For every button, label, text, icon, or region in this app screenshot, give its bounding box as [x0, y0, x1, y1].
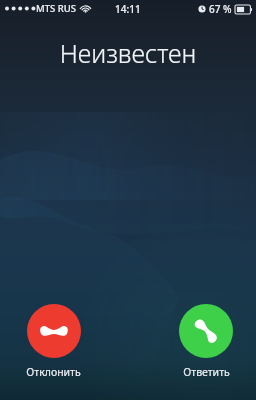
- staticText: 67 %: [209, 2, 232, 16]
- staticText: Ответить: [183, 365, 230, 379]
- staticText: Неизвестен: [0, 36, 256, 70]
- other: Decline call: [27, 304, 81, 358]
- staticText: 14:11: [115, 2, 141, 16]
- staticText: MTS RUS: [36, 2, 76, 15]
- staticText: Отклонить: [26, 365, 81, 379]
- button[interactable]: Answer call: [177, 303, 235, 380]
- button[interactable]: Decline call: [24, 303, 83, 380]
- other: Answer call: [179, 304, 233, 358]
